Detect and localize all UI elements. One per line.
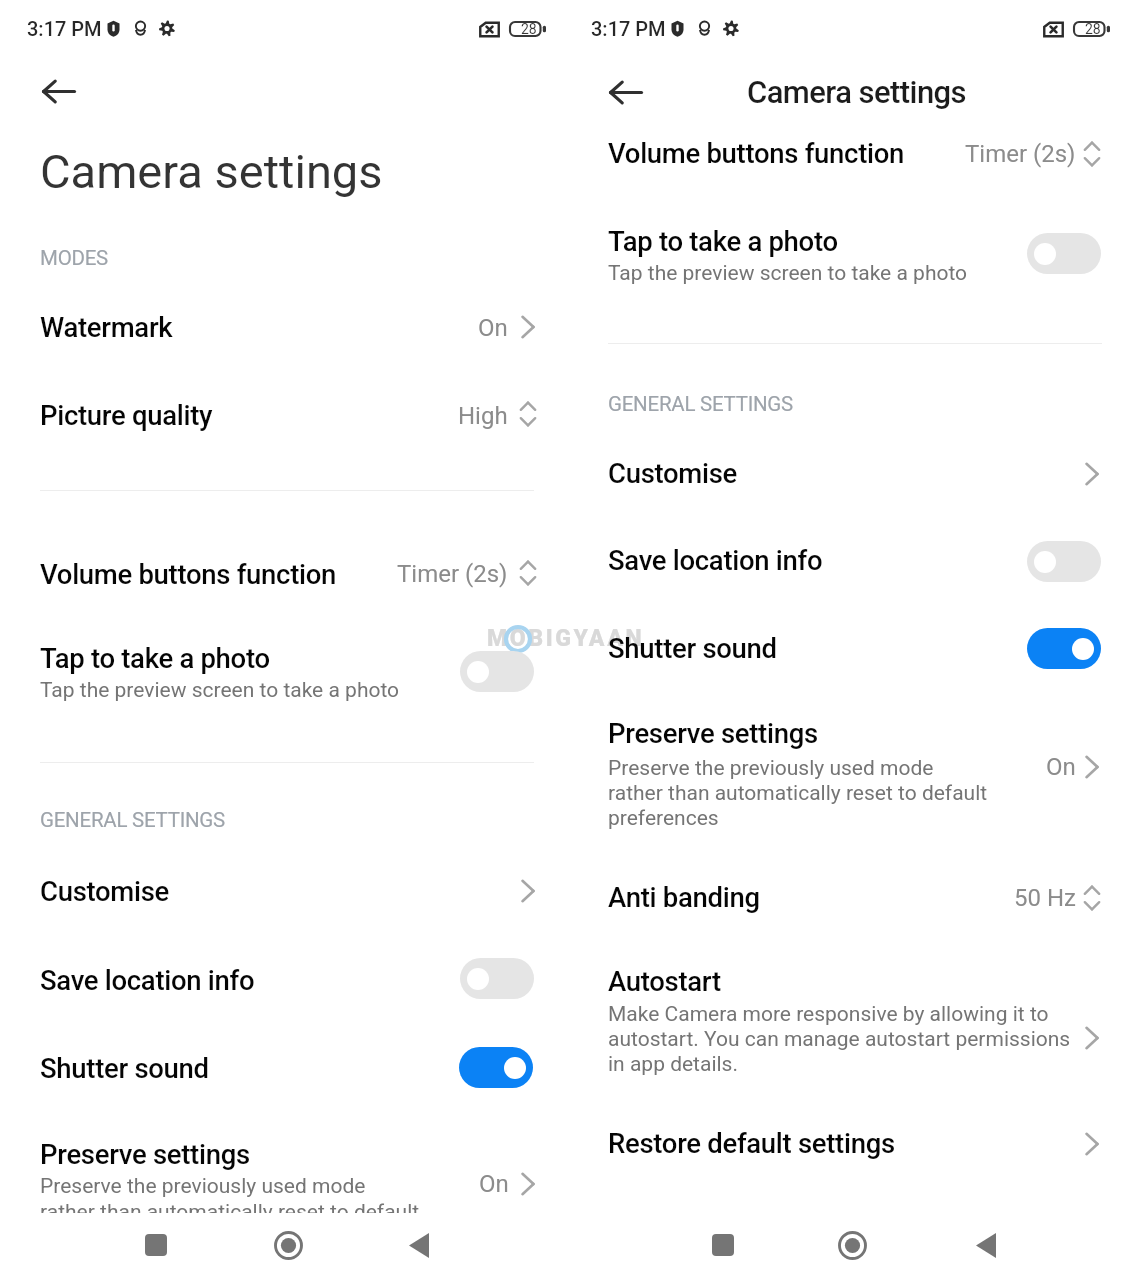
staticText: Shutter sound	[608, 632, 777, 664]
button[interactable]: Shutter sound	[1027, 628, 1101, 669]
button[interactable]: Recents	[109, 1213, 203, 1277]
staticText: Camera settings	[40, 144, 383, 199]
staticText: rather than automatically reset to defau…	[608, 781, 988, 806]
staticText: On	[1046, 753, 1076, 781]
staticText: 3:17 PM	[591, 17, 666, 40]
staticText: Restore default settings	[608, 1127, 895, 1159]
button[interactable]: Save location info	[1027, 541, 1101, 582]
staticText: Volume buttons function	[608, 137, 905, 169]
staticText: Picture quality	[40, 399, 213, 431]
staticText: Save location info	[40, 964, 255, 996]
staticText: Preserve settings	[40, 1138, 250, 1170]
button[interactable]: Save location info	[0, 953, 564, 1027]
button[interactable]: Shutter sound	[459, 1047, 533, 1088]
staticText: autostart. You can manage autostart perm…	[608, 1027, 1071, 1052]
button[interactable]: Preserve settings	[564, 710, 1128, 835]
staticText: 28	[1085, 21, 1101, 37]
staticText: 3:17 PM	[27, 17, 102, 40]
staticText: MOBIGYAAN	[487, 625, 645, 652]
staticText: Shutter sound	[40, 1052, 209, 1084]
staticText: Preserve the previously used mode	[40, 1174, 366, 1199]
staticText: GENERAL SETTINGS	[40, 808, 226, 832]
staticText: Volume buttons function	[40, 558, 337, 590]
button[interactable]: Customise	[564, 448, 1128, 520]
staticText: Timer (2s)	[965, 140, 1076, 168]
staticText: Tap to take a photo	[608, 225, 838, 257]
button[interactable]: Picture quality	[0, 385, 564, 465]
button[interactable]: Customise	[0, 866, 564, 938]
staticText: Timer (2s)	[397, 560, 508, 588]
staticText: 50 Hz	[1014, 884, 1076, 912]
button[interactable]: Tap to take a photo	[0, 632, 564, 727]
button[interactable]: Shutter sound	[0, 1042, 564, 1116]
button[interactable]: Shutter sound	[564, 623, 1128, 695]
staticText: Save location info	[608, 544, 823, 576]
staticText: Tap the preview screen to take a photo	[608, 261, 968, 286]
staticText: Make Camera more responsive by allowing …	[608, 1002, 1049, 1027]
staticText: Camera settings	[747, 74, 967, 110]
staticText: Anti banding	[608, 881, 760, 913]
button[interactable]: Save location info	[460, 958, 534, 999]
staticText: On	[479, 1170, 509, 1198]
button[interactable]: Home	[241, 1213, 335, 1277]
button[interactable]: Tap to take a photo	[564, 216, 1128, 308]
staticText: preferences	[608, 806, 719, 831]
button[interactable]: Recents	[676, 1213, 770, 1277]
button[interactable]: Tap to take a photo	[1027, 233, 1101, 274]
button[interactable]: Back	[372, 1213, 466, 1277]
button[interactable]: Home	[805, 1213, 899, 1277]
staticText: Tap the preview screen to take a photo	[40, 678, 400, 703]
button[interactable]: Volume buttons function	[0, 545, 564, 620]
button[interactable]: Tap to take a photo	[460, 651, 534, 692]
button[interactable]: Back	[594, 61, 656, 123]
staticText: Tap to take a photo	[40, 642, 270, 674]
staticText: GENERAL SETTINGS	[608, 392, 794, 416]
button[interactable]: Autostart	[564, 958, 1128, 1083]
staticText: MODES	[40, 246, 109, 270]
staticText: Preserve the previously used mode	[608, 756, 934, 781]
staticText: High	[458, 402, 508, 430]
staticText: On	[478, 314, 508, 342]
button[interactable]: Restore default settings	[564, 1118, 1128, 1190]
button[interactable]: Save location info	[564, 537, 1128, 609]
button[interactable]: Anti banding	[564, 870, 1128, 942]
button[interactable]: Watermark	[0, 300, 564, 375]
button[interactable]: Volume buttons function	[564, 126, 1128, 198]
button[interactable]: Preserve settings	[0, 1128, 564, 1213]
button[interactable]: Back	[939, 1213, 1033, 1277]
staticText: Autostart	[608, 965, 721, 997]
button[interactable]: Back	[27, 60, 89, 122]
staticText: Customise	[40, 875, 169, 907]
staticText: rather than automatically reset to defau…	[40, 1200, 420, 1213]
staticText: Watermark	[40, 311, 173, 343]
staticText: in app details.	[608, 1052, 738, 1077]
staticText: 28	[521, 21, 537, 37]
staticText: Customise	[608, 457, 737, 489]
staticText: Preserve settings	[608, 717, 818, 749]
